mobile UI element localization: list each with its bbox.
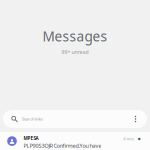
staticText: 4 mins [124, 137, 135, 141]
button[interactable]: Search links [3, 110, 147, 128]
staticText: Search links [22, 116, 43, 122]
staticText: Messages [42, 27, 107, 45]
staticText: MPESA [23, 135, 38, 141]
staticText: 99+ unread [61, 48, 88, 55]
button[interactable]: MPESA [0, 132, 150, 150]
staticText: PLP90S3OJR Confirmed.You have [23, 142, 101, 149]
